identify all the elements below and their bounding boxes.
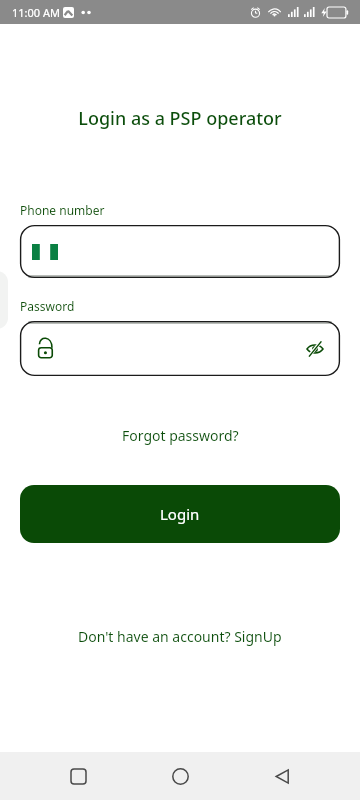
- staticText: Login as a PSP operator: [0, 106, 360, 131]
- staticText: Login: [160, 504, 200, 524]
- button[interactable]: [20, 225, 340, 278]
- button[interactable]: Home: [156, 752, 204, 800]
- staticText: 11:00 AM: [12, 5, 60, 20]
- staticText: Don't have an account? SignUp: [78, 627, 282, 646]
- button[interactable]: Don't have an account? SignUp: [0, 623, 360, 650]
- staticText: Forgot password?: [122, 426, 239, 445]
- button[interactable]: Password locked: [30, 334, 60, 364]
- button[interactable]: Show password: [298, 332, 332, 366]
- staticText: Phone number: [20, 202, 105, 218]
- button[interactable]: Back: [258, 752, 306, 800]
- button[interactable]: Forgot password?: [0, 422, 360, 449]
- button[interactable]: Login: [20, 485, 340, 543]
- staticText: Password: [20, 298, 75, 314]
- button[interactable]: Password locked: [20, 321, 340, 376]
- button[interactable]: Recent apps: [54, 752, 102, 800]
